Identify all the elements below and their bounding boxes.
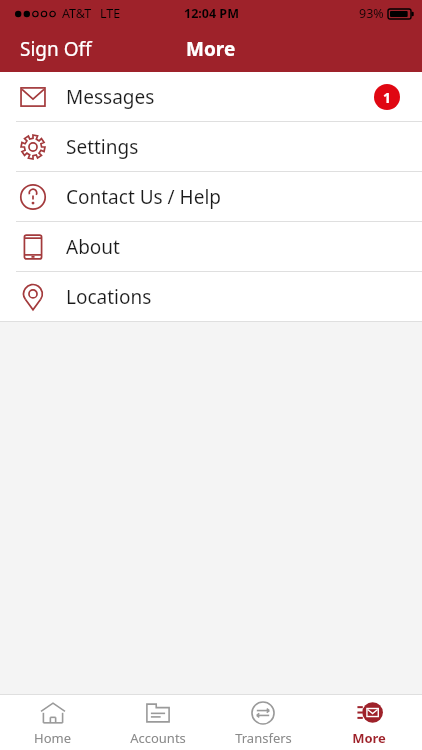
staticText: 93%: [359, 5, 384, 22]
staticText: Accounts: [130, 729, 186, 747]
button[interactable]: Home: [0, 695, 105, 750]
staticText: LTE: [100, 5, 121, 22]
staticText: Transfers: [235, 729, 292, 747]
button[interactable]: Accounts: [105, 695, 210, 750]
staticText: Sign Off: [20, 36, 92, 62]
button[interactable]: More: [316, 695, 422, 750]
staticText: Contact Us / Help: [66, 184, 222, 210]
staticText: More: [352, 729, 386, 747]
button[interactable]: Settings: [0, 122, 422, 171]
button[interactable]: About: [0, 222, 422, 271]
staticText: Messages: [66, 84, 155, 110]
staticText: AT&T: [62, 5, 92, 22]
staticText: 1: [383, 88, 392, 107]
staticText: More: [186, 36, 236, 62]
staticText: Settings: [66, 134, 139, 160]
button[interactable]: Transfers: [210, 695, 316, 750]
button[interactable]: Contact Us / Help: [0, 172, 422, 221]
staticText: 12:04 PM: [184, 5, 239, 22]
button[interactable]: Locations: [0, 272, 422, 321]
button[interactable]: Sign Off: [0, 28, 112, 70]
staticText: About: [66, 234, 120, 260]
staticText: Locations: [66, 284, 152, 310]
button[interactable]: Messages: [0, 72, 422, 121]
staticText: Home: [34, 729, 71, 747]
